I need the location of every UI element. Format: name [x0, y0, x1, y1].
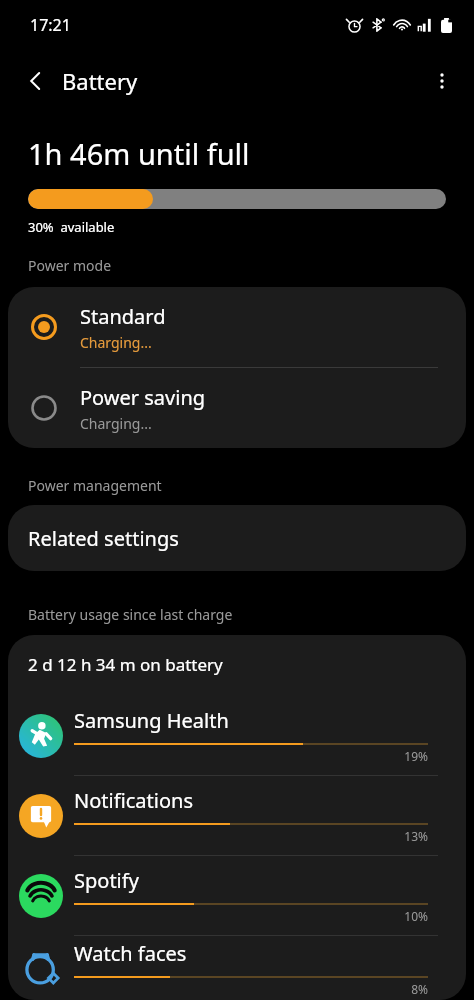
staticText: 1h 46m until full [28, 134, 250, 173]
button[interactable]: Watch faces [8, 936, 466, 1000]
button[interactable]: More options [420, 59, 464, 103]
button[interactable]: Samsung Health [8, 696, 466, 775]
staticText: Standard [80, 303, 166, 330]
button[interactable]: Related settings [8, 505, 466, 571]
staticText: Samsung Health [74, 707, 229, 734]
staticText: Power mode [28, 256, 112, 275]
button[interactable]: Notifications [8, 776, 466, 855]
staticText: 10% [74, 908, 428, 924]
button[interactable]: Power saving [8, 368, 466, 448]
staticText: Watch faces [74, 940, 187, 967]
staticText: Charging... [80, 333, 152, 352]
staticText: 13% [74, 828, 428, 844]
staticText: 17:21 [30, 14, 71, 36]
button[interactable]: Spotify [8, 856, 466, 935]
staticText: Notifications [74, 787, 193, 814]
button[interactable]: Standard [8, 287, 466, 367]
staticText: Battery usage since last charge [28, 605, 233, 624]
staticText: 30% available [28, 218, 115, 236]
staticText: Battery [62, 66, 138, 96]
staticText: 2 d 12 h 34 m on battery [28, 653, 223, 676]
staticText: Spotify [74, 867, 139, 894]
button[interactable]: Back [14, 59, 58, 103]
staticText: Power management [28, 476, 162, 495]
staticText: Charging... [80, 414, 152, 433]
staticText: Related settings [28, 525, 179, 552]
staticText: 19% [74, 748, 428, 764]
staticText: 8% [74, 981, 428, 997]
staticText: Power saving [80, 384, 206, 411]
